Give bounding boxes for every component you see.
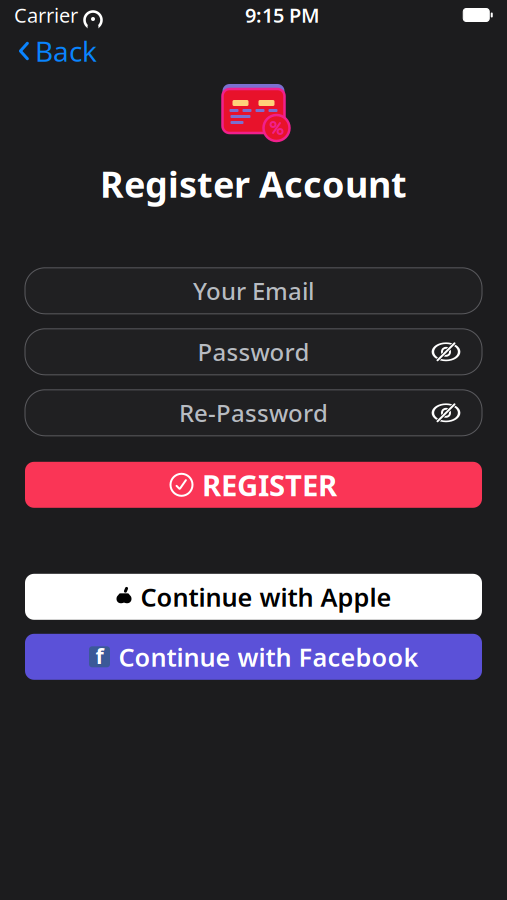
button[interactable]: REGISTER [25, 462, 482, 508]
button[interactable]: Password [25, 329, 482, 375]
button[interactable]: f [25, 634, 482, 680]
staticText: Your Email [193, 275, 314, 307]
staticText: REGISTER [202, 465, 337, 504]
staticText: Continue with Facebook [118, 640, 418, 674]
staticText: Re-Password [179, 397, 328, 429]
staticText: Back [35, 32, 97, 70]
staticText: f [95, 642, 103, 670]
staticText: 9:15 PM [245, 2, 320, 28]
staticText: Register Account [100, 160, 407, 208]
staticText: Carrier [14, 2, 78, 28]
button[interactable]: Re-Password [25, 390, 482, 436]
button[interactable]: Back [0, 24, 115, 78]
button[interactable]: Your Email [25, 268, 482, 314]
staticText: Password [197, 336, 309, 368]
staticText: Continue with Apple [140, 580, 391, 614]
button[interactable]: Continue with Apple [25, 574, 482, 620]
